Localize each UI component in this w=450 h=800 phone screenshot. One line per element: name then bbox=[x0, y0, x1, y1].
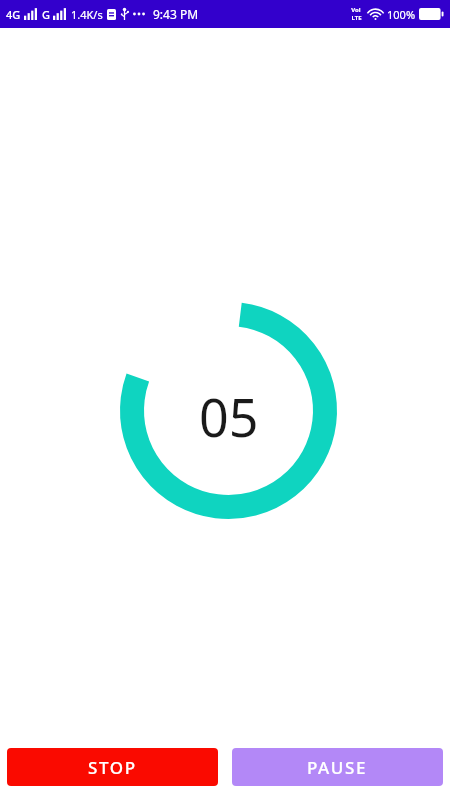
staticText: 4G bbox=[6, 7, 21, 22]
staticText: PAUSE bbox=[307, 756, 368, 779]
staticText: STOP bbox=[88, 756, 137, 779]
staticText: G bbox=[42, 7, 50, 22]
staticText: LTE bbox=[351, 14, 362, 22]
button[interactable]: STOP bbox=[7, 748, 218, 786]
staticText: 100% bbox=[387, 7, 416, 22]
staticText: 05 bbox=[199, 381, 259, 452]
staticText: 1.4K/s bbox=[71, 7, 103, 22]
button[interactable]: PAUSE bbox=[232, 748, 443, 786]
staticText: Vol bbox=[351, 6, 361, 14]
staticText: 9:43 PM bbox=[153, 6, 199, 22]
